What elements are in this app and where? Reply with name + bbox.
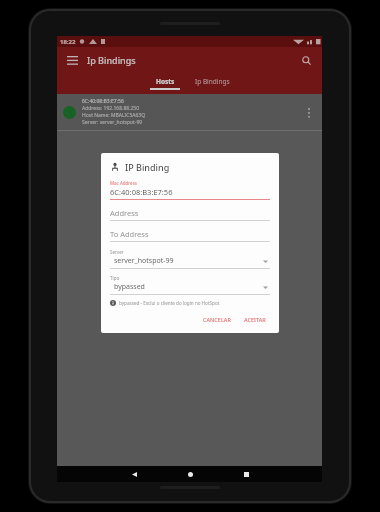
staticText: ACEITAR xyxy=(244,316,266,323)
staticText: Hosts xyxy=(156,77,175,86)
button[interactable]: Server xyxy=(110,249,270,269)
staticText: Mac Address xyxy=(110,180,137,186)
button[interactable]: 6C:40:08:B3:E7:56 xyxy=(57,94,322,130)
staticText: server_hotspot-99 xyxy=(114,256,174,266)
button[interactable]: Ip Bindings xyxy=(187,73,237,90)
staticText: Address: 192.168.88.250 xyxy=(82,105,140,112)
button[interactable]: Hosts xyxy=(143,73,187,90)
staticText: To Address xyxy=(110,229,149,239)
staticText: IP Binding xyxy=(125,161,170,173)
button[interactable]: Home xyxy=(177,466,203,482)
staticText: bypassed xyxy=(114,282,145,292)
staticText: Ip Bindings xyxy=(87,54,136,66)
staticText: 6C:40:08:B3:E7:56 xyxy=(110,187,173,197)
button[interactable]: ACEITAR xyxy=(240,314,270,325)
staticText: Server: server_hotspot-99 xyxy=(82,119,143,126)
staticText: 18:22 xyxy=(60,38,76,46)
staticText: Server xyxy=(110,249,124,255)
button[interactable]: Tipo xyxy=(110,275,270,295)
button[interactable]: Recent apps xyxy=(233,466,259,482)
staticText: CANCELAR xyxy=(203,316,231,323)
staticText: 6C:40:08:B3:E7:56 xyxy=(82,98,124,105)
staticText: Address xyxy=(110,208,139,218)
button[interactable]: Back xyxy=(121,466,147,482)
button[interactable]: Open navigation menu xyxy=(63,51,81,69)
staticText: bypassed - Exclui o cliente do login no … xyxy=(119,300,220,306)
staticText: Host Name: MBALIC5A63Q xyxy=(82,112,146,119)
staticText: Ip Bindings xyxy=(195,77,230,86)
button[interactable]: Search xyxy=(297,51,315,69)
button[interactable]: More options xyxy=(302,105,316,119)
button[interactable]: CANCELAR xyxy=(199,314,235,325)
staticText: Tipo xyxy=(110,275,120,281)
